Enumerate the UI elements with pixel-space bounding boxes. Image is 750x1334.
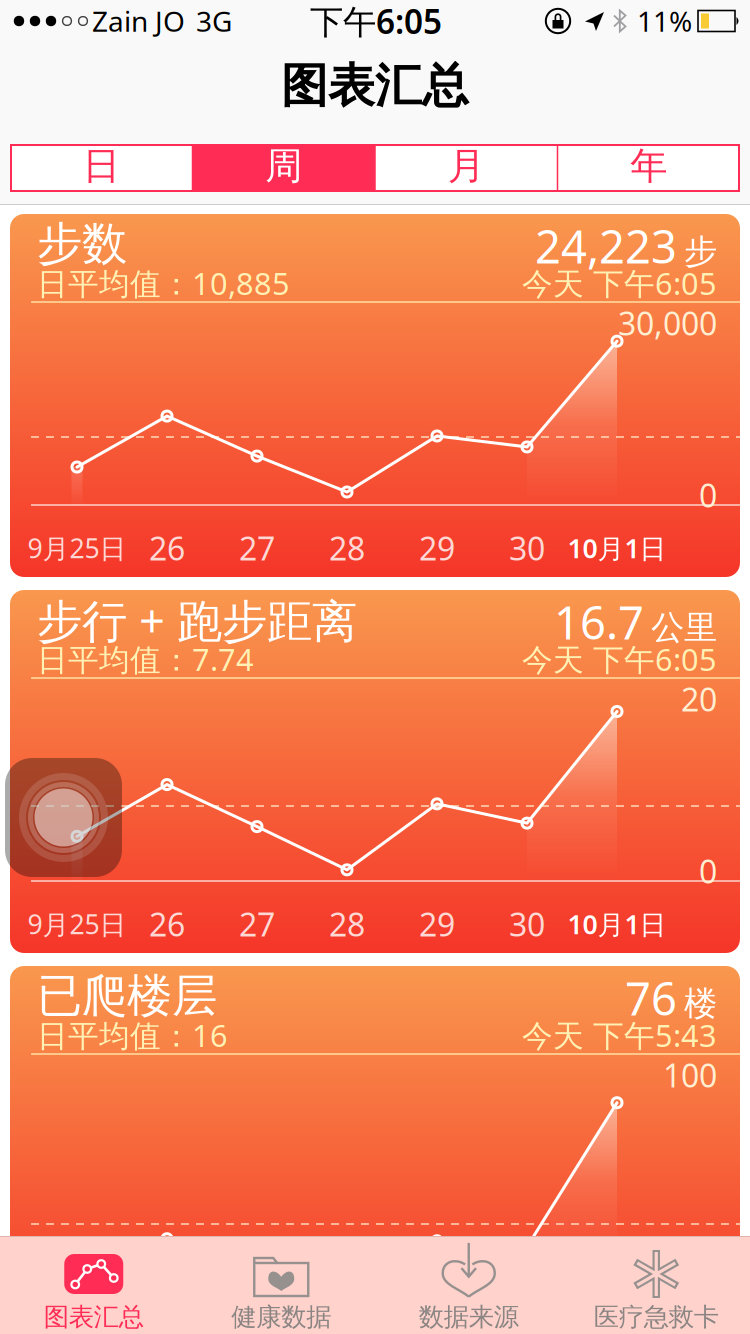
staticText: 楼 [684, 983, 717, 1024]
staticText: 数据来源 [419, 1301, 519, 1332]
staticText: 健康数据 [231, 1301, 331, 1332]
staticText: 29 [419, 1279, 455, 1321]
staticText: 0 [699, 474, 717, 516]
staticText: 下午6:05 [310, 0, 442, 43]
staticText: 27 [239, 903, 275, 945]
staticText: 周 [265, 143, 302, 189]
button[interactable]: 步行 + 跑步距离 [10, 590, 740, 953]
button[interactable]: 步数 [10, 214, 740, 577]
staticText: 已爬楼层 [37, 968, 217, 1024]
staticText: 30 [509, 903, 545, 945]
button[interactable]: 年 [557, 142, 740, 190]
staticText: 今天 下午6:05 [522, 263, 717, 303]
staticText: 24,223 [535, 216, 677, 276]
staticText: 100 [663, 1054, 717, 1096]
staticText: 29 [419, 903, 455, 945]
staticText: 3G [196, 2, 232, 40]
staticText: 9月25日 [27, 530, 126, 566]
staticText: 0 [699, 850, 717, 892]
staticText: 30 [509, 1279, 545, 1321]
staticText: 20 [681, 678, 717, 720]
button[interactable]: 已爬楼层 [10, 966, 740, 1329]
staticText: 9月25日 [27, 906, 126, 942]
button[interactable]: AssistiveTouch [5, 758, 122, 877]
staticText: 10月1日 [567, 906, 666, 942]
button[interactable]: 数据来源 [375, 1236, 562, 1334]
button[interactable]: 日 [10, 142, 192, 190]
staticText: 日平均值：16 [37, 1015, 228, 1055]
button[interactable]: 周 [192, 142, 375, 190]
staticText: 步行 + 跑步距离 [37, 590, 357, 650]
staticText: 11% [637, 2, 692, 40]
staticText: 28 [329, 903, 365, 945]
staticText: 日 [83, 143, 120, 189]
button[interactable]: 月 [375, 142, 557, 190]
staticText: 30 [509, 527, 545, 569]
staticText: 日平均值：7.74 [37, 639, 254, 679]
staticText: 26 [149, 903, 185, 945]
staticText: 月 [448, 143, 485, 189]
staticText: 16.7 [554, 592, 644, 652]
staticText: 26 [149, 527, 185, 569]
staticText: 10月1日 [567, 1282, 666, 1318]
staticText: 30,000 [618, 302, 717, 344]
staticText: 日平均值：10,885 [37, 263, 290, 303]
button[interactable]: 医疗急救卡 [562, 1236, 750, 1334]
staticText: 76 [625, 968, 677, 1028]
staticText: 今天 下午6:05 [522, 639, 717, 679]
staticText: 9月25日 [27, 1282, 126, 1318]
staticText: 图表汇总 [281, 57, 469, 115]
staticText: 今天 下午5:43 [522, 1015, 717, 1055]
staticText: 公里 [651, 607, 717, 648]
staticText: 29 [419, 527, 455, 569]
staticText: 年 [630, 143, 667, 189]
staticText: 步 [684, 231, 717, 272]
staticText: 28 [329, 527, 365, 569]
staticText: 27 [239, 527, 275, 569]
staticText: 图表汇总 [44, 1301, 144, 1332]
staticText: 27 [239, 1279, 275, 1321]
button[interactable]: 图表汇总 [0, 1236, 187, 1334]
staticText: 10月1日 [567, 530, 666, 566]
staticText: 步数 [37, 216, 127, 272]
staticText: Zain JO [92, 2, 185, 40]
staticText: 医疗急救卡 [594, 1301, 719, 1332]
staticText: 28 [329, 1279, 365, 1321]
button[interactable]: 健康数据 [187, 1236, 375, 1334]
